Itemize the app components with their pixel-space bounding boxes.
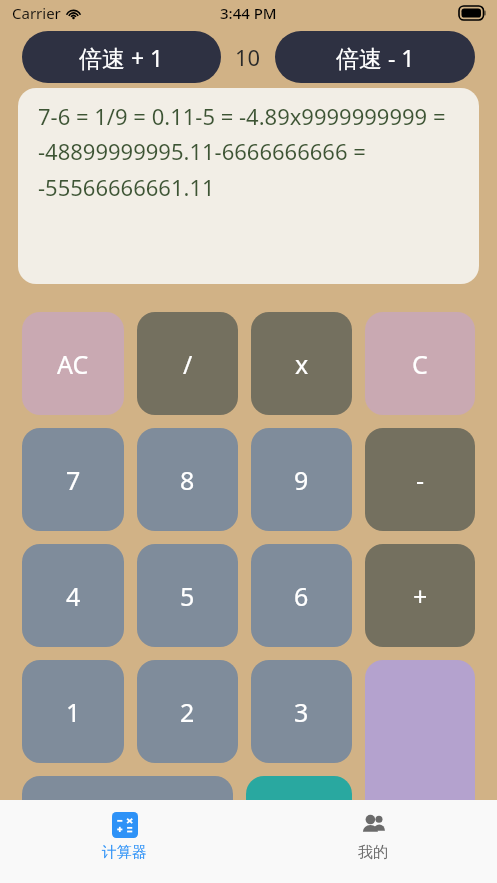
button[interactable]: 1 [22,660,124,763]
button[interactable]: 3 [251,660,352,763]
staticText: 我的 [358,843,388,862]
button[interactable]: 2 [137,660,238,763]
button[interactable]: 倍速 - 1 [275,31,475,83]
button[interactable]: 7 [22,428,124,531]
staticText: 倍速 - 1 [336,42,415,73]
button[interactable]: . [246,776,352,879]
button[interactable]: 9 [251,428,352,531]
button[interactable]: + [365,544,475,647]
staticText: 计算器 [102,843,147,862]
staticText: 3 [294,695,309,729]
button[interactable]: C [365,312,475,415]
button[interactable]: 8 [137,428,238,531]
button[interactable]: / [137,312,238,415]
other: 计算器 [112,812,138,838]
button[interactable]: 计算器 [0,800,248,883]
button[interactable]: 我的 [248,800,497,883]
staticText: 7 [66,463,81,497]
staticText: 7-6 = 1/9 = 0.11-5 = -4.89x9999999999 = … [38,101,465,203]
button[interactable]: x [251,312,352,415]
staticText: 0 [120,811,135,845]
staticText: + [413,579,428,613]
staticText: - [416,463,425,497]
staticText: / [183,347,193,381]
button[interactable]: 5 [137,544,238,647]
button[interactable]: = [365,660,475,879]
staticText: 9 [294,463,309,497]
staticText: 2 [180,695,195,729]
button[interactable]: AC [22,312,124,415]
staticText: C [412,347,428,381]
staticText: 3:44 PM [220,3,277,23]
staticText: x [295,347,309,381]
staticText: 10 [235,42,261,72]
button[interactable]: 4 [22,544,124,647]
button[interactable]: 6 [251,544,352,647]
staticText: 1 [66,695,81,729]
staticText: 8 [180,463,195,497]
staticText: 4 [66,579,81,613]
other: 我的 [360,812,386,838]
staticText: AC [57,347,89,381]
staticText: 6 [294,579,309,613]
button[interactable]: 0 [22,776,233,879]
button[interactable]: 倍速 + 1 [22,31,221,83]
staticText: Carrier [12,3,61,23]
button[interactable]: - [365,428,475,531]
staticText: 倍速 + 1 [79,42,164,73]
staticText: 5 [180,579,195,613]
